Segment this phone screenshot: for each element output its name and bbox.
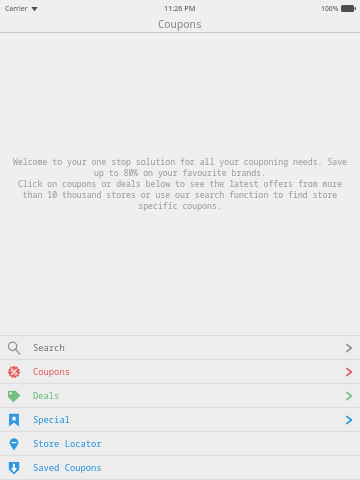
staticText: 100% bbox=[321, 4, 339, 13]
button[interactable]: Search bbox=[0, 336, 360, 359]
staticText: Deals bbox=[33, 390, 60, 402]
staticText: Special bbox=[33, 414, 70, 426]
staticText: Store Locator bbox=[33, 438, 102, 450]
staticText: Coupons bbox=[158, 17, 203, 31]
staticText: 11:26 PM bbox=[164, 3, 196, 13]
staticText: Saved Coupons bbox=[33, 462, 102, 474]
button[interactable]: Coupons bbox=[0, 360, 360, 383]
staticText: Welcome to your one stop solution for al… bbox=[12, 156, 348, 211]
button[interactable]: Saved Coupons bbox=[0, 456, 360, 479]
button[interactable]: Deals bbox=[0, 384, 360, 407]
staticText: Carrier bbox=[5, 4, 28, 13]
staticText: Search bbox=[33, 342, 65, 354]
button[interactable]: Store Locator bbox=[0, 432, 360, 455]
staticText: Coupons bbox=[33, 366, 70, 378]
button[interactable]: Special bbox=[0, 408, 360, 431]
